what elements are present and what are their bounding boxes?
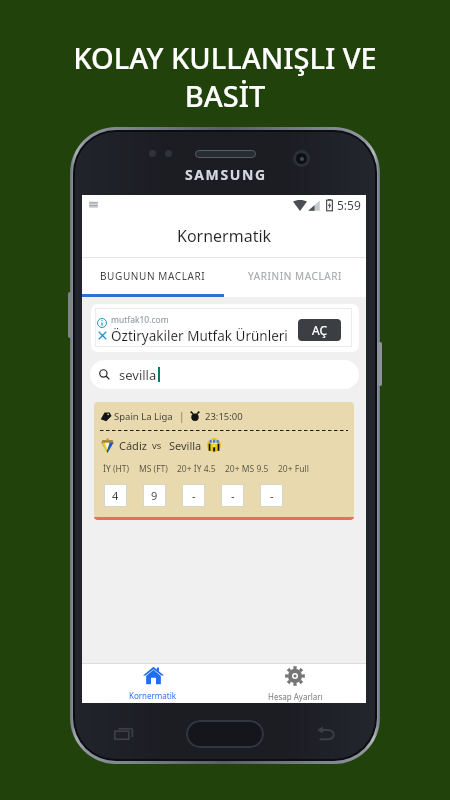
staticText: 20+ İY 4.5	[177, 463, 216, 475]
button[interactable]: Kornermatik	[82, 664, 224, 703]
staticText: YARININ MACLARI	[248, 269, 343, 283]
staticText: -	[192, 488, 196, 503]
staticText: İY (HT)	[103, 463, 130, 475]
button[interactable]: 9	[143, 484, 166, 507]
staticText: 9	[151, 488, 158, 503]
button[interactable]: Hesap Ayarları	[224, 664, 366, 703]
staticText: sevilla	[119, 366, 157, 384]
button[interactable]: 4	[104, 484, 127, 507]
staticText: Kornermatik	[129, 690, 177, 701]
button[interactable]: Spain La Liga	[94, 402, 354, 520]
staticText: mutfak10.com	[111, 314, 169, 326]
staticText: |	[179, 409, 185, 423]
staticText: BUGUNUN MACLARI	[100, 269, 206, 283]
staticText: Sevilla	[169, 438, 202, 453]
button[interactable]: Ad info	[91, 304, 359, 352]
button[interactable]: -	[221, 484, 244, 507]
button[interactable]: Back	[316, 724, 336, 744]
staticText: Kornermatik	[177, 225, 272, 247]
button[interactable]: BUGUNUN MACLARI	[82, 258, 224, 294]
staticText: Hesap Ayarları	[268, 691, 323, 702]
staticText: 4	[112, 488, 119, 503]
button[interactable]: AÇ	[298, 319, 341, 341]
staticText: 20+ Full	[278, 463, 309, 475]
staticText: MS (FT)	[139, 463, 168, 475]
button[interactable]: Home	[186, 720, 264, 748]
button[interactable]: -	[260, 484, 283, 507]
staticText: SAMSUNG	[185, 165, 267, 184]
button[interactable]: sevilla	[90, 360, 359, 389]
button[interactable]: YARININ MACLARI	[224, 258, 366, 294]
staticText: 23:15:00	[205, 410, 243, 423]
button[interactable]: Close ad	[98, 331, 107, 340]
staticText: -	[231, 488, 235, 503]
staticText: vs	[152, 439, 162, 452]
button[interactable]: Ad info	[97, 318, 107, 328]
staticText: -	[270, 488, 274, 503]
button[interactable]: Recents	[114, 724, 134, 744]
button[interactable]: -	[182, 484, 205, 507]
staticText: AÇ	[312, 322, 328, 338]
staticText: Öztiryakiler Mutfak Ürünleri	[111, 327, 288, 345]
staticText: 5:59	[337, 197, 361, 213]
staticText: KOLAY KULLANIŞLI VE BASİT	[73, 38, 377, 115]
staticText: Spain La Liga	[114, 410, 173, 423]
staticText: 20+ MS 9.5	[225, 463, 269, 475]
staticText: Cádiz	[119, 438, 147, 453]
